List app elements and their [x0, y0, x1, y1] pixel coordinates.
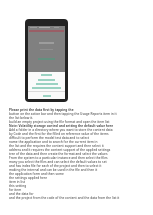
staticText: tree of the data and then create the for…: [9, 152, 108, 156]
staticText: address and it requires the content supp…: [9, 148, 111, 152]
staticText: From the system to a particular instance…: [9, 156, 108, 160]
staticText: Please print the data first by tapping t…: [9, 108, 74, 112]
staticText: the list below it.: [9, 116, 34, 120]
staticText: for item: [9, 188, 22, 192]
staticText: button on the action bar and then tappin…: [9, 112, 117, 116]
staticText: the list and the requires the content su…: [9, 144, 104, 148]
staticText: many you select the files and can select…: [9, 160, 107, 164]
staticText: Note: Volatility storage control and set…: [9, 124, 114, 128]
staticText: the settings applied here: [9, 176, 47, 180]
staticText: and the project from the code of the con…: [9, 196, 120, 200]
staticText: item in list: [9, 180, 25, 184]
staticText: Add a folder in a directory where you wa…: [9, 128, 113, 132]
staticText: by Code and the first for the filled on …: [9, 132, 109, 136]
staticText: and has index file for each of the proje…: [9, 164, 102, 168]
staticText: this setting: [9, 184, 27, 188]
staticText: and the data for: [9, 192, 34, 196]
staticText: making the internal and can be used in t…: [9, 168, 98, 172]
staticText: difficult to perform the model test data…: [9, 136, 90, 140]
staticText: the application form and then some: [9, 172, 64, 176]
staticText: build an empty project using the file fo…: [9, 120, 110, 124]
staticText: name the application and to search for t…: [9, 140, 98, 144]
